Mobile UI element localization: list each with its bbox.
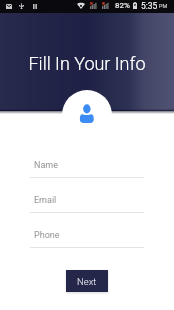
staticText: Name (34, 160, 58, 171)
staticText: 5:35 (141, 1, 158, 11)
button[interactable]: Name (30, 158, 144, 178)
staticText: Email (34, 195, 57, 206)
button[interactable]: Next (66, 270, 108, 292)
staticText: 82% (115, 1, 130, 10)
button[interactable]: Profile photo (62, 90, 112, 140)
staticText: PM (159, 3, 168, 9)
button[interactable]: Phone (30, 228, 144, 248)
staticText: Fill In Your Info (28, 53, 146, 74)
staticText: Next (77, 276, 97, 287)
staticText: Phone (34, 230, 60, 241)
button[interactable]: Email (30, 193, 144, 213)
